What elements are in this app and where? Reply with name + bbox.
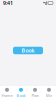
button[interactable]: Book: [13, 47, 43, 54]
staticText: Me: [46, 93, 52, 98]
button[interactable]: Plan: [28, 86, 42, 100]
staticText: Book: [21, 47, 34, 54]
staticText: 9:41: [3, 0, 13, 7]
staticText: Plan: [31, 93, 38, 98]
staticText: •ıl: [43, 0, 47, 7]
button[interactable]: Me: [42, 86, 56, 100]
button[interactable]: Book: [14, 86, 28, 100]
button[interactable]: Home: [0, 86, 14, 100]
staticText: Book: [16, 93, 25, 98]
staticText: Home: [1, 93, 12, 98]
